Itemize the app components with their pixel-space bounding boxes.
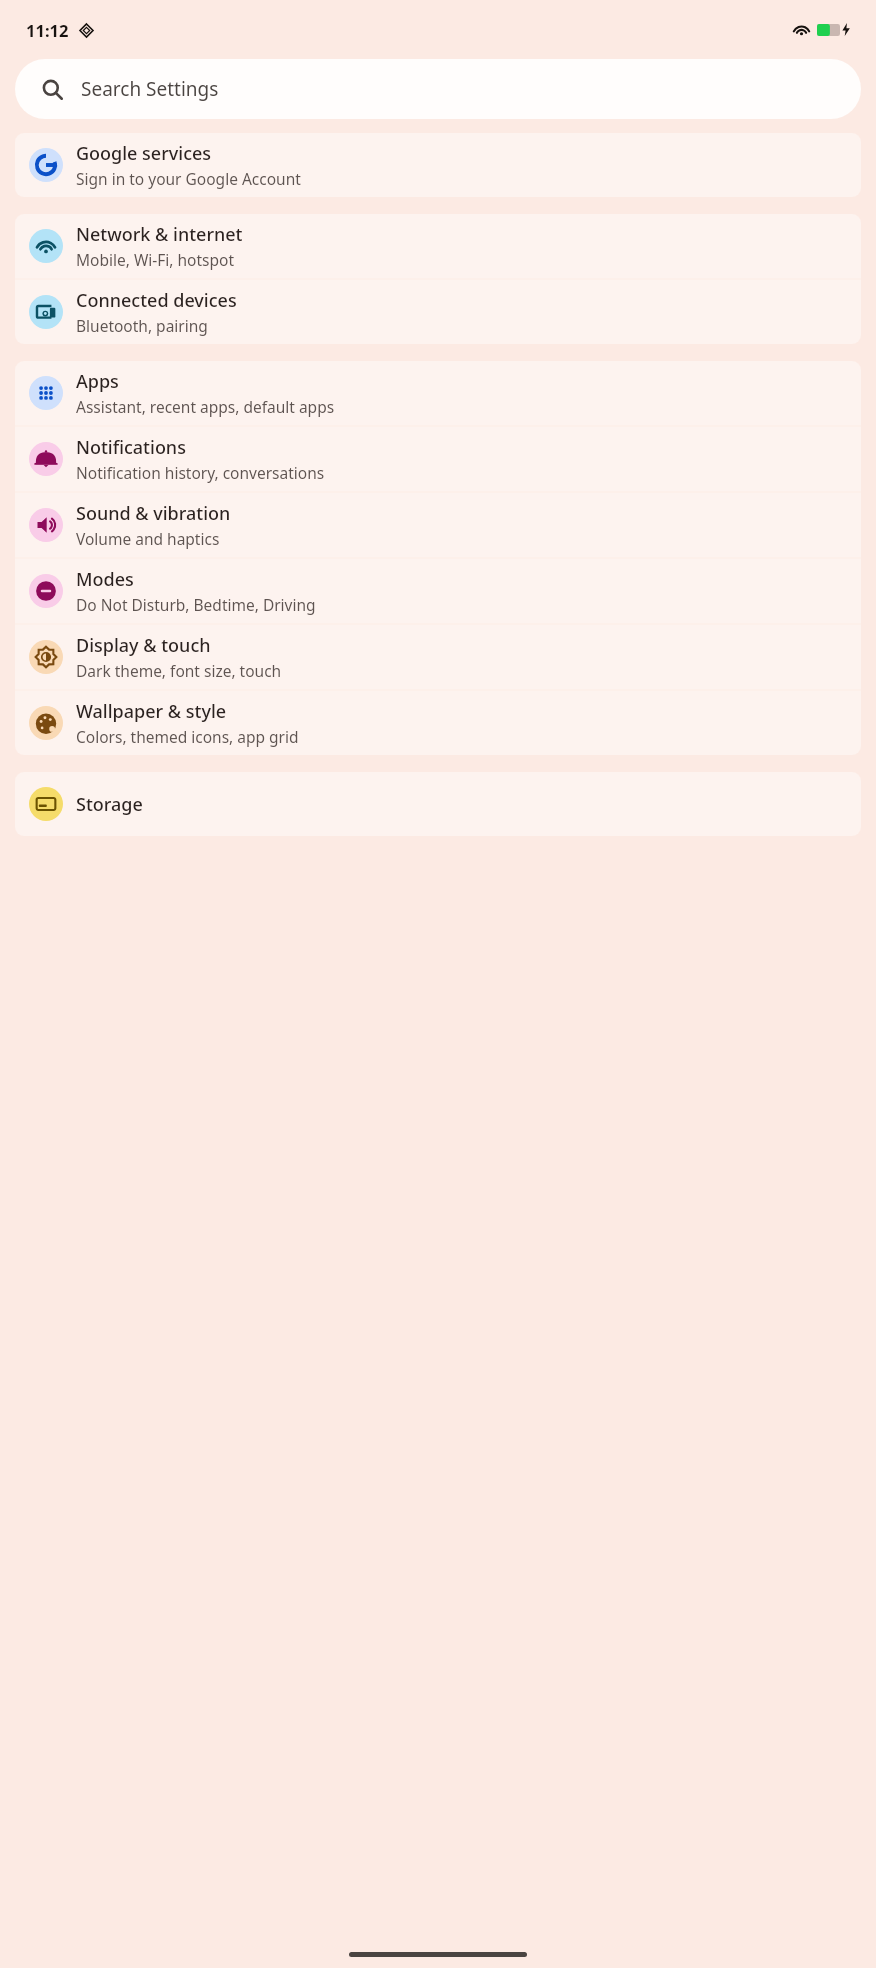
staticText: Notifications — [76, 435, 186, 460]
staticText: Notification history, conversations — [76, 462, 325, 483]
staticText: Dark theme, font size, touch — [76, 660, 282, 681]
button[interactable]: Search Settings — [15, 59, 861, 119]
staticText: Assistant, recent apps, default apps — [76, 396, 335, 417]
staticText: Colors, themed icons, app grid — [76, 726, 299, 747]
staticText: Display & touch — [76, 633, 211, 658]
button[interactable]: Wallpaper & style — [15, 691, 861, 755]
staticText: Sign in to your Google Account — [76, 168, 301, 189]
staticText: Storage — [76, 792, 143, 817]
staticText: Google services — [76, 141, 212, 166]
staticText: Network & internet — [76, 222, 243, 247]
staticText: Volume and haptics — [76, 528, 220, 549]
staticText: Mobile, Wi-Fi, hotspot — [76, 249, 235, 270]
staticText: Sound & vibration — [76, 501, 231, 526]
button[interactable]: Notifications — [15, 427, 861, 491]
button[interactable]: Sound & vibration — [15, 493, 861, 557]
button[interactable]: Storage — [15, 772, 861, 836]
button[interactable]: Apps — [15, 361, 861, 425]
button[interactable]: Display & touch — [15, 625, 861, 689]
button[interactable]: Google services — [15, 133, 861, 197]
staticText: Search Settings — [81, 76, 219, 102]
button[interactable]: Connected devices — [15, 280, 861, 344]
staticText: Bluetooth, pairing — [76, 315, 208, 336]
staticText: Do Not Disturb, Bedtime, Driving — [76, 594, 316, 615]
staticText: Modes — [76, 567, 134, 592]
staticText: Apps — [76, 369, 119, 394]
button[interactable]: Network & internet — [15, 214, 861, 278]
staticText: Wallpaper & style — [76, 699, 227, 724]
button[interactable]: Modes — [15, 559, 861, 623]
staticText: 11:12 — [26, 19, 69, 41]
staticText: Connected devices — [76, 288, 237, 313]
